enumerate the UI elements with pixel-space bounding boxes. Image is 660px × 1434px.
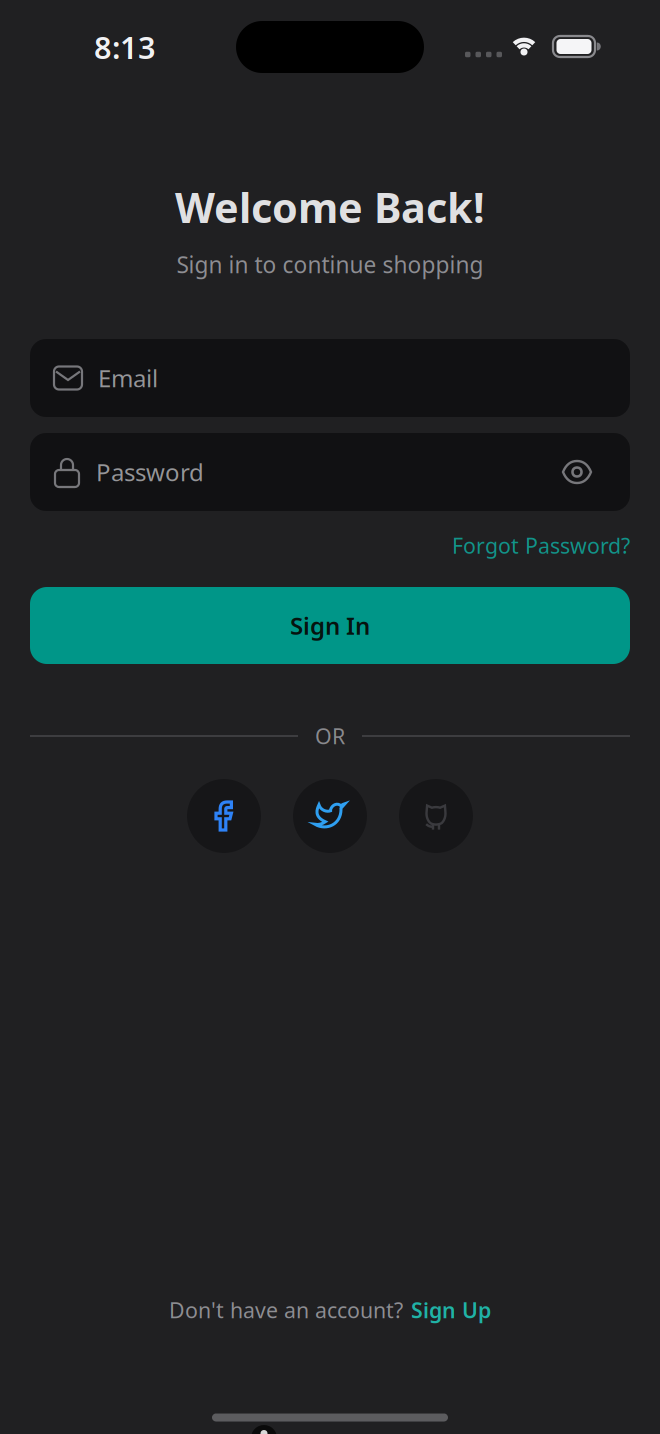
button[interactable]: Sign Up	[411, 1296, 491, 1324]
staticText: 8:13	[94, 27, 156, 67]
staticText: Sign In	[290, 610, 370, 641]
button[interactable]: Sign in with GitHub	[399, 779, 473, 853]
staticText: Email	[98, 362, 158, 394]
button[interactable]: Forgot Password?	[452, 531, 630, 560]
staticText: Forgot Password?	[452, 531, 630, 560]
button[interactable]: Show password	[552, 447, 602, 497]
staticText: OR	[315, 722, 345, 750]
staticText: Sign in to continue shopping	[176, 249, 483, 279]
button[interactable]: Sign in with Facebook	[187, 779, 261, 853]
button[interactable]: Email	[30, 339, 630, 417]
button[interactable]: Sign In	[30, 587, 630, 664]
staticText: Sign Up	[411, 1296, 491, 1324]
button[interactable]: Sign in with Twitter	[293, 779, 367, 853]
button[interactable]: Password	[30, 433, 630, 511]
staticText: Password	[96, 456, 204, 488]
staticText: Don't have an account?	[169, 1296, 403, 1324]
staticText: Welcome Back!	[175, 180, 485, 234]
